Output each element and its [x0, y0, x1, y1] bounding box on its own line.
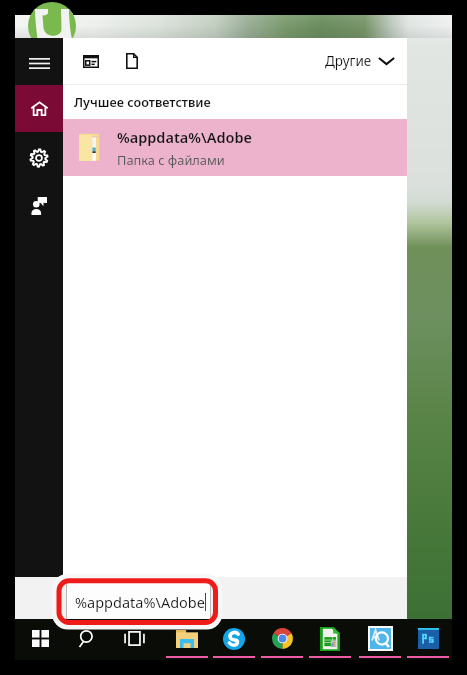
button[interactable]: Home [15, 85, 63, 132]
button[interactable]: %appdata%\Adobe [63, 119, 407, 176]
button[interactable]: Другие [319, 46, 401, 76]
staticText: %appdata%\Adobe [117, 127, 253, 147]
button[interactable]: File Explorer [164, 619, 210, 660]
button[interactable]: Scanner [357, 619, 403, 660]
button[interactable]: Settings [15, 134, 63, 182]
staticText: %appdata%\Adobe [75, 592, 205, 612]
button[interactable]: Expand menu [15, 42, 63, 85]
button[interactable]: Apps [79, 46, 103, 76]
button[interactable]: Start [17, 619, 63, 660]
button[interactable]: Google Chrome [259, 619, 305, 660]
button[interactable]: Skype [211, 619, 257, 660]
button[interactable]: Spreadsheet [307, 619, 353, 660]
button[interactable]: Task view [111, 619, 157, 660]
button[interactable]: Photoshop [405, 619, 451, 660]
staticText: Лучшее соответствие [74, 94, 211, 111]
staticText: Другие [325, 52, 372, 70]
button[interactable]: Documents [121, 46, 143, 76]
staticText: Папка с файлами [117, 151, 225, 168]
button[interactable]: Feedback [15, 182, 63, 230]
button[interactable]: Search [63, 619, 109, 660]
button[interactable]: %appdata%\Adobe [66, 582, 211, 621]
